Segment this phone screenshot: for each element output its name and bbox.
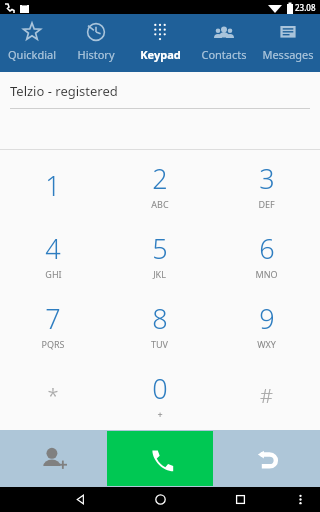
staticText: 4: [45, 230, 61, 267]
button[interactable]: Back: [40, 487, 120, 512]
staticText: Telzio - registered: [10, 82, 118, 100]
button[interactable]: Contacts: [192, 14, 256, 72]
button[interactable]: Keypad: [128, 14, 192, 72]
staticText: +: [157, 408, 163, 420]
button[interactable]: 4: [0, 220, 106, 290]
button[interactable]: 6: [213, 220, 320, 290]
button[interactable]: Call: [107, 431, 213, 486]
staticText: PQRS: [41, 338, 65, 350]
staticText: #: [260, 382, 273, 409]
staticText: Messages: [262, 47, 314, 62]
button[interactable]: More options: [280, 487, 320, 512]
staticText: 0: [152, 370, 168, 407]
staticText: Quickdial: [8, 47, 56, 62]
button[interactable]: History: [64, 14, 128, 72]
button[interactable]: 1: [0, 150, 106, 220]
staticText: 7: [45, 300, 61, 337]
button[interactable]: Backspace: [213, 430, 320, 487]
button[interactable]: #: [213, 360, 320, 430]
staticText: MNO: [255, 268, 278, 280]
staticText: JKL: [153, 268, 166, 280]
staticText: *: [47, 382, 59, 409]
button[interactable]: 5: [106, 220, 213, 290]
staticText: TUV: [151, 338, 168, 350]
button[interactable]: 7: [0, 290, 106, 360]
staticText: 5: [152, 230, 168, 267]
staticText: 23.08: [295, 2, 316, 13]
staticText: GHI: [45, 268, 62, 280]
staticText: Contacts: [201, 47, 247, 62]
button[interactable]: 0: [106, 360, 213, 430]
staticText: ABC: [151, 198, 169, 210]
button[interactable]: Add contact: [0, 430, 107, 487]
button[interactable]: 3: [213, 150, 320, 220]
button[interactable]: Recents: [200, 487, 280, 512]
staticText: 8: [152, 300, 168, 337]
button[interactable]: *: [0, 360, 106, 430]
button[interactable]: Messages: [256, 14, 320, 72]
staticText: WXY: [257, 338, 276, 350]
button[interactable]: Quickdial: [0, 14, 64, 72]
staticText: 6: [259, 230, 275, 267]
button[interactable]: 8: [106, 290, 213, 360]
staticText: 2: [152, 160, 168, 197]
staticText: History: [77, 47, 115, 62]
staticText: Keypad: [140, 47, 181, 62]
button[interactable]: 2: [106, 150, 213, 220]
staticText: 3: [259, 160, 275, 197]
button[interactable]: Home: [120, 487, 200, 512]
button[interactable]: 9: [213, 290, 320, 360]
staticText: 1: [45, 167, 61, 204]
staticText: 9: [259, 300, 275, 337]
staticText: DEF: [258, 198, 275, 210]
